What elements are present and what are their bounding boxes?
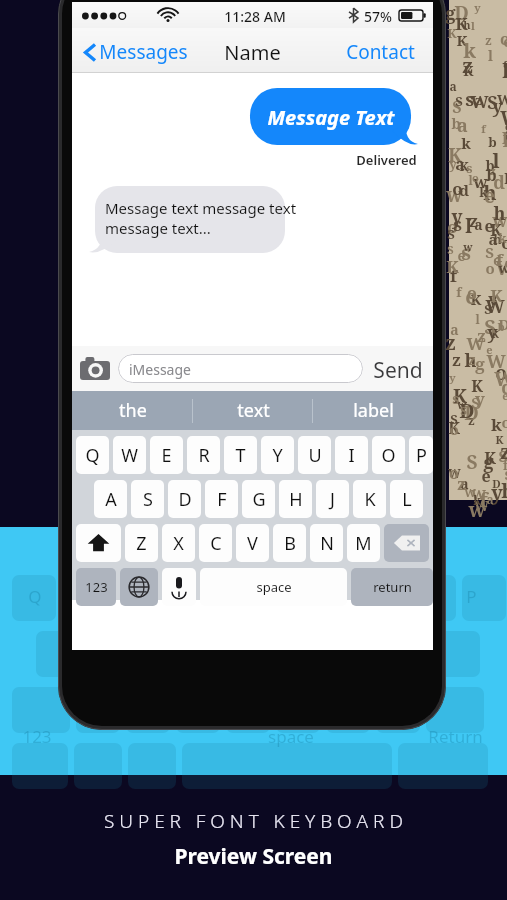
button[interactable]: J: [316, 480, 349, 518]
staticText: K: [463, 61, 474, 80]
button[interactable]: E: [150, 436, 183, 474]
button[interactable]: Send: [370, 356, 426, 385]
button[interactable]: N: [310, 524, 343, 562]
button[interactable]: D: [168, 480, 201, 518]
staticText: h: [504, 169, 507, 188]
button[interactable]: return: [351, 568, 433, 606]
button[interactable]: Q: [76, 436, 109, 474]
button[interactable]: label: [313, 391, 433, 430]
staticText: K: [495, 432, 504, 447]
button[interactable]: space: [200, 568, 347, 606]
staticText: D: [492, 476, 501, 491]
staticText: S: [447, 225, 455, 243]
staticText: K: [448, 142, 462, 168]
staticText: b: [485, 156, 495, 175]
staticText: d: [493, 170, 505, 195]
button[interactable]: U: [298, 436, 331, 474]
button[interactable]: A: [94, 480, 127, 518]
staticText: D: [454, 0, 469, 26]
staticText: z: [477, 325, 486, 347]
staticText: J: [330, 487, 335, 512]
staticText: g: [483, 450, 494, 475]
staticText: s: [461, 239, 471, 266]
button[interactable]: B: [273, 524, 306, 562]
staticText: y: [491, 479, 503, 506]
staticText: l: [488, 46, 493, 65]
button[interactable]: L: [390, 480, 423, 518]
staticText: S: [485, 242, 494, 262]
button[interactable]: text: [193, 391, 313, 430]
staticText: k: [479, 183, 488, 201]
button[interactable]: Delete: [384, 524, 429, 562]
button[interactable]: H: [279, 480, 312, 518]
staticText: z: [490, 163, 496, 178]
button[interactable]: P: [409, 436, 433, 474]
button[interactable]: R: [187, 436, 220, 474]
button[interactable]: C: [199, 524, 232, 562]
staticText: S: [450, 410, 458, 428]
button[interactable]: M: [347, 524, 380, 562]
staticText: H: [289, 487, 303, 512]
staticText: f: [496, 248, 503, 271]
button[interactable]: Dictate: [162, 568, 196, 606]
staticText: a: [457, 113, 468, 138]
staticText: N: [320, 531, 334, 556]
staticText: K: [490, 284, 503, 307]
button[interactable]: Switch keyboard: [120, 568, 158, 606]
staticText: k: [473, 492, 481, 508]
staticText: K: [471, 375, 483, 397]
staticText: o: [501, 231, 507, 254]
staticText: K: [484, 447, 496, 469]
staticText: F: [217, 487, 227, 512]
staticText: S U P E R F O N T K E Y B O A R D: [104, 808, 403, 834]
staticText: l: [502, 58, 507, 84]
staticText: o: [500, 28, 507, 50]
staticText: w: [446, 182, 463, 208]
button[interactable]: F: [205, 480, 238, 518]
staticText: k: [498, 229, 507, 247]
staticText: h: [493, 201, 506, 226]
staticText: o: [495, 360, 507, 386]
button[interactable]: Contact: [342, 39, 419, 65]
staticText: K: [446, 255, 459, 278]
button[interactable]: Messages: [80, 37, 192, 67]
staticText: S: [484, 313, 496, 340]
staticText: K: [455, 12, 468, 35]
staticText: h: [501, 477, 507, 504]
staticText: V: [247, 531, 258, 556]
staticText: z: [462, 52, 473, 79]
staticText: W: [497, 90, 507, 109]
staticText: w: [498, 259, 507, 277]
staticText: o: [449, 419, 459, 439]
staticText: K: [456, 30, 468, 50]
staticText: k: [463, 37, 476, 64]
button[interactable]: G: [242, 480, 275, 518]
button[interactable]: Camera: [80, 357, 110, 380]
staticText: e: [486, 342, 493, 357]
button[interactable]: V: [236, 524, 269, 562]
staticText: h: [463, 17, 471, 32]
button[interactable]: S: [131, 480, 164, 518]
staticText: Z: [136, 531, 147, 556]
staticText: s: [498, 442, 507, 468]
button[interactable]: iMessage: [118, 354, 363, 383]
button[interactable]: W: [113, 436, 146, 474]
staticText: o: [467, 282, 477, 304]
button[interactable]: O: [372, 436, 405, 474]
staticText: y: [488, 288, 498, 310]
button[interactable]: Shift: [76, 524, 121, 562]
button[interactable]: Z: [125, 524, 158, 562]
staticText: z: [500, 438, 507, 465]
staticText: h: [493, 231, 502, 247]
staticText: g: [475, 352, 485, 375]
button[interactable]: K: [353, 480, 386, 518]
button[interactable]: T: [224, 436, 257, 474]
staticText: O: [381, 443, 396, 468]
button[interactable]: Y: [261, 436, 294, 474]
button[interactable]: the: [72, 391, 193, 430]
staticText: P: [416, 443, 427, 468]
button[interactable]: I: [335, 436, 368, 474]
button[interactable]: 123: [76, 568, 116, 606]
staticText: T: [235, 443, 246, 468]
button[interactable]: X: [162, 524, 195, 562]
